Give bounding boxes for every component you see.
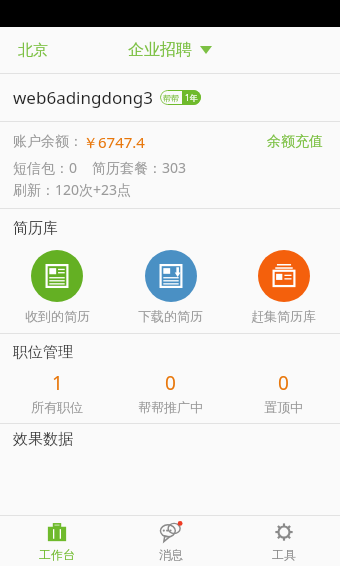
- button[interactable]: 0: [114, 370, 227, 415]
- staticText: 1: [52, 370, 63, 396]
- button[interactable]: 工具: [227, 516, 340, 566]
- staticText: 职位管理: [13, 343, 73, 362]
- button[interactable]: 收到的简历: [0, 250, 114, 324]
- staticText: 置顶中: [264, 399, 303, 415]
- staticText: 企业招聘: [128, 40, 192, 60]
- staticText: 消息: [159, 547, 183, 562]
- staticText: 帮帮推广中: [138, 399, 203, 415]
- staticText: 余额充值: [267, 133, 323, 151]
- staticText: 工具: [272, 547, 296, 562]
- staticText: 简历套餐：303: [92, 158, 187, 177]
- staticText: 短信包：0: [13, 158, 78, 177]
- staticText: ￥6747.4: [83, 132, 145, 152]
- staticText: 刷新：120次+23点: [13, 180, 132, 199]
- staticText: 简历库: [13, 219, 58, 238]
- staticText: web6adingdong3: [13, 86, 153, 109]
- staticText: 1年: [185, 92, 198, 103]
- staticText: 所有职位: [31, 399, 83, 415]
- button[interactable]: 北京: [14, 37, 52, 64]
- button[interactable]: 0: [227, 370, 340, 415]
- button[interactable]: 消息: [114, 516, 227, 566]
- button[interactable]: 企业招聘: [124, 36, 216, 64]
- button[interactable]: 余额充值: [263, 129, 327, 155]
- button[interactable]: 下载的简历: [114, 250, 227, 324]
- staticText: 收到的简历: [25, 308, 90, 324]
- staticText: 赶集简历库: [251, 308, 316, 324]
- button[interactable]: web6adingdong3: [0, 74, 340, 121]
- staticText: 效果数据: [13, 430, 73, 449]
- staticText: 0: [278, 370, 289, 396]
- staticText: 0: [165, 370, 176, 396]
- button[interactable]: 赶集简历库: [227, 250, 340, 324]
- staticText: 帮帮: [163, 93, 179, 103]
- button[interactable]: 1: [0, 370, 114, 415]
- button[interactable]: 工作台: [0, 516, 114, 566]
- staticText: 账户余额：: [13, 133, 83, 151]
- staticText: 北京: [18, 41, 48, 60]
- staticText: 下载的简历: [138, 308, 203, 324]
- staticText: 工作台: [39, 547, 75, 562]
